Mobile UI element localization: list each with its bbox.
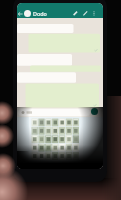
button[interactable]: Back xyxy=(17,10,25,18)
button[interactable] xyxy=(18,109,90,116)
button[interactable]: Dodo xyxy=(24,9,47,18)
button[interactable]: More options xyxy=(90,9,98,17)
button[interactable]: Send xyxy=(91,108,98,115)
button[interactable]: Attach xyxy=(81,9,90,18)
button[interactable]: Call xyxy=(71,9,80,18)
button[interactable] xyxy=(17,117,103,169)
staticText: Dodo xyxy=(33,10,47,17)
